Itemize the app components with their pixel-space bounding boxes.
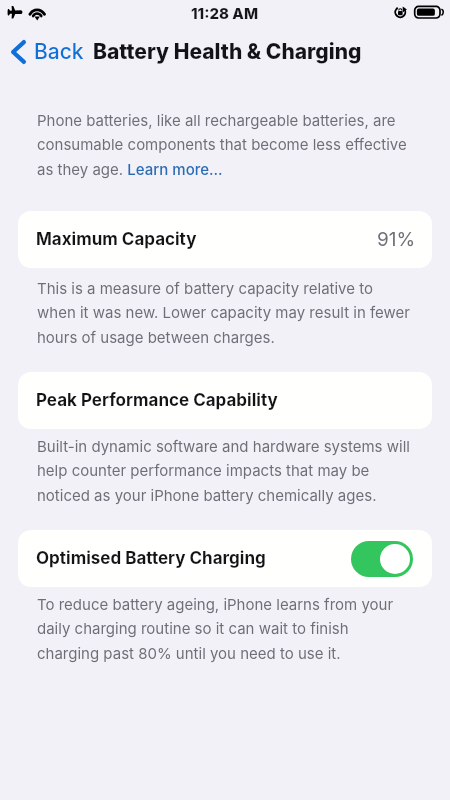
staticText: 91%	[377, 228, 416, 251]
staticText: Phone batteries, like all rechargeable b…	[37, 111, 410, 178]
staticText: This is a measure of battery capacity re…	[37, 279, 410, 346]
staticText: To reduce battery ageing, iPhone learns …	[37, 595, 410, 662]
staticText: Battery Health & Charging	[93, 39, 362, 64]
staticText: Peak Performance Capability	[36, 390, 278, 411]
staticText: Maximum Capacity	[36, 229, 197, 250]
button[interactable]: Peak Performance Capability	[18, 372, 432, 429]
button[interactable]: Optimised Battery Charging toggle	[351, 541, 413, 577]
button[interactable]: Optimised Battery Charging	[18, 530, 432, 587]
button[interactable]: Back	[0, 36, 88, 67]
button[interactable]: Learn more...	[126, 160, 224, 180]
staticText: Back	[34, 39, 84, 64]
button[interactable]: Maximum Capacity	[18, 211, 432, 268]
staticText: Built-in dynamic software and hardware s…	[37, 437, 410, 504]
staticText: Optimised Battery Charging	[36, 548, 266, 569]
staticText: 11:28 AM	[191, 4, 259, 22]
